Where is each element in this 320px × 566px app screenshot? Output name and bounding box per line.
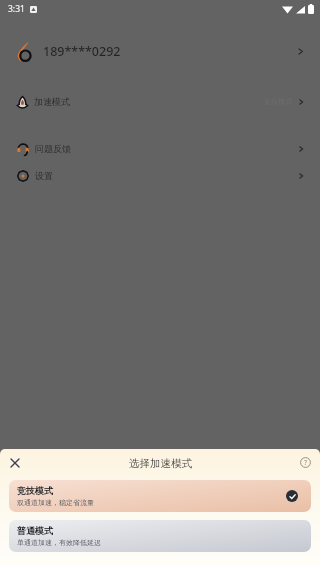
button[interactable]: 竞技模式 [9, 480, 311, 512]
button[interactable]: 设置 [0, 163, 320, 188]
staticText: 选择加速模式 [129, 457, 192, 470]
button[interactable]: Help [295, 452, 316, 473]
staticText: 双通道加速，稳定省流量 [17, 498, 94, 507]
staticText: ? [304, 458, 308, 468]
button[interactable]: 189****0292 [0, 34, 320, 68]
staticText: 189****0292 [43, 43, 121, 60]
staticText: 设置 [35, 170, 53, 181]
staticText: 竞技模式 [17, 485, 53, 496]
staticText: 普通模式 [17, 525, 53, 536]
button[interactable]: Close [4, 452, 25, 473]
button[interactable]: 普通模式 [9, 520, 311, 552]
staticText: 单通道加速，有效降低延迟 [17, 538, 101, 547]
button[interactable]: 问题反馈 [0, 136, 320, 161]
staticText: 加速模式 [34, 96, 70, 107]
staticText: 3:31 [8, 3, 25, 15]
staticText: 问题反馈 [35, 143, 71, 154]
button[interactable]: 加速模式 [0, 89, 320, 114]
